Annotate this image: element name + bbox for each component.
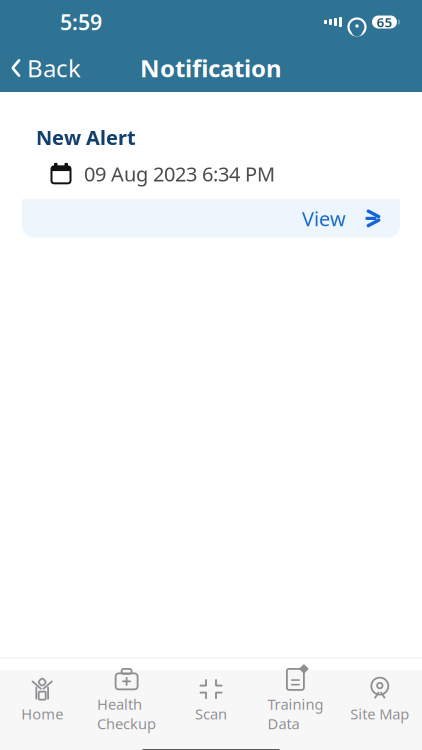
staticText: Health Checkup (97, 694, 156, 733)
button[interactable]: Training Data (253, 662, 338, 739)
staticText: Back (27, 52, 81, 84)
staticText: Scan (195, 704, 227, 724)
button[interactable]: Home (0, 672, 84, 730)
staticText: 09 Aug 2023 6:34 PM (84, 161, 275, 187)
staticText: Training Data (267, 694, 323, 733)
staticText: 5:59 (60, 8, 102, 36)
button[interactable]: View (22, 199, 400, 238)
button[interactable]: Site Map (338, 672, 422, 730)
staticText: View (302, 205, 346, 232)
staticText: 65 (376, 13, 392, 31)
button[interactable]: Back (0, 46, 81, 90)
button[interactable]: Health Checkup (84, 662, 169, 739)
staticText: Notification (140, 52, 282, 84)
staticText: Site Map (350, 704, 409, 724)
button[interactable]: Scan (169, 672, 253, 730)
staticText: New Alert (36, 124, 136, 151)
staticText: Home (21, 704, 63, 724)
